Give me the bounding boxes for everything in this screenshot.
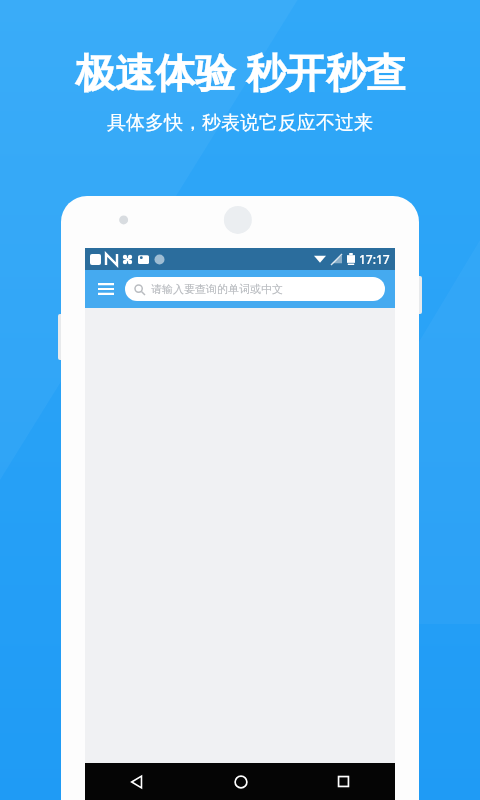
button[interactable]: Back <box>85 763 189 800</box>
staticText: 请输入要查询的单词或中文 <box>151 282 283 296</box>
staticText: 具体多快，秒表说它反应不过来 <box>107 111 373 135</box>
button[interactable]: 请输入要查询的单词或中文 <box>125 277 385 301</box>
button[interactable]: Menu <box>93 276 119 302</box>
staticText: 17:17 <box>359 251 390 267</box>
button[interactable]: Recents <box>292 763 395 800</box>
button[interactable]: Home <box>189 763 292 800</box>
staticText: 极速体验 秒开秒查 <box>75 44 406 99</box>
